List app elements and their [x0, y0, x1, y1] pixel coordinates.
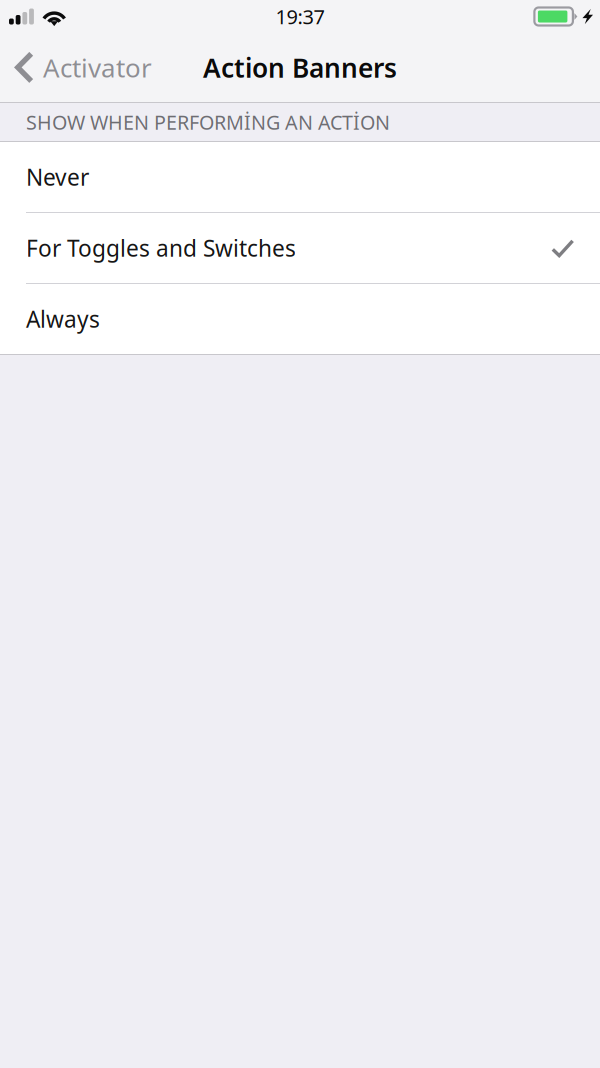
staticText: Always [26, 304, 100, 334]
staticText: Action Banners [203, 50, 397, 85]
button[interactable]: Never [0, 142, 600, 212]
staticText: Never [26, 162, 89, 192]
button[interactable]: Always [0, 284, 600, 354]
staticText: SHOW WHEN PERFORMİNG AN ACTİON [26, 109, 390, 135]
staticText: 19:37 [275, 3, 324, 30]
staticText: For Toggles and Switches [26, 233, 296, 263]
button[interactable]: For Toggles and Switches [0, 213, 600, 283]
staticText: Activator [43, 50, 152, 85]
button[interactable]: Back to Activator [0, 33, 164, 102]
